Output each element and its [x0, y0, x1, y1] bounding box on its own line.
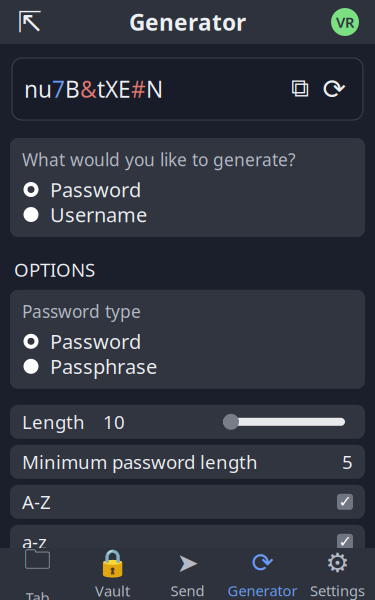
- staticText: Username: [50, 201, 147, 228]
- button[interactable]: a-z: [10, 525, 365, 559]
- staticText: a-z: [22, 529, 47, 554]
- button[interactable]: Account: [323, 0, 367, 44]
- button[interactable]: A-Z: [10, 485, 365, 519]
- button[interactable]: Passphrase: [10, 354, 365, 379]
- staticText: ⚙: [325, 548, 349, 578]
- staticText: Password: [50, 328, 141, 355]
- staticText: ➤: [176, 548, 198, 578]
- staticText: B: [65, 74, 80, 104]
- staticText: Vault: [95, 581, 130, 600]
- staticText: Password: [50, 176, 141, 203]
- button[interactable]: Minimum password length: [10, 445, 365, 479]
- staticText: Generator: [129, 7, 246, 37]
- staticText: What would you like to generate?: [22, 148, 296, 171]
- staticText: ⟳: [251, 548, 273, 578]
- staticText: Length: [22, 409, 85, 434]
- staticText: Generator: [227, 581, 297, 600]
- staticText: tXE: [97, 74, 131, 104]
- staticText: 🔒: [96, 547, 129, 578]
- staticText: ✓: [338, 493, 351, 511]
- button[interactable]: Username: [10, 202, 365, 227]
- button[interactable]: ⚙: [300, 550, 375, 598]
- button[interactable]: ⟳: [225, 550, 300, 598]
- staticText: Minimum password length: [22, 449, 258, 474]
- button[interactable]: Copy password: [283, 72, 317, 106]
- staticText: Settings: [310, 581, 365, 600]
- button[interactable]: 🗀: [0, 550, 75, 598]
- staticText: N: [146, 74, 163, 104]
- staticText: ⟳: [322, 73, 345, 105]
- staticText: &: [80, 74, 97, 104]
- staticText: ✓: [338, 533, 351, 551]
- staticText: #: [131, 74, 146, 104]
- staticText: OPTIONS: [14, 257, 95, 282]
- button[interactable]: Regenerate password: [317, 72, 351, 106]
- staticText: Send: [170, 581, 204, 600]
- button[interactable]: Expand: [8, 0, 52, 44]
- button[interactable]: Password: [10, 329, 365, 354]
- staticText: Password type: [22, 300, 141, 323]
- staticText: Tab: [25, 588, 49, 600]
- button[interactable]: Password: [10, 177, 365, 202]
- staticText: ⇱: [17, 5, 42, 39]
- staticText: nu: [24, 74, 52, 104]
- button[interactable]: ➤: [150, 550, 225, 598]
- staticText: ⧉: [291, 77, 309, 101]
- button[interactable]: 🔒: [75, 550, 150, 598]
- staticText: 10: [103, 409, 125, 434]
- staticText: VR: [336, 12, 354, 32]
- staticText: 5: [342, 449, 353, 474]
- staticText: 7: [52, 74, 65, 104]
- staticText: A-Z: [22, 489, 51, 514]
- staticText: 🗀: [24, 541, 51, 585]
- staticText: Passphrase: [50, 353, 157, 380]
